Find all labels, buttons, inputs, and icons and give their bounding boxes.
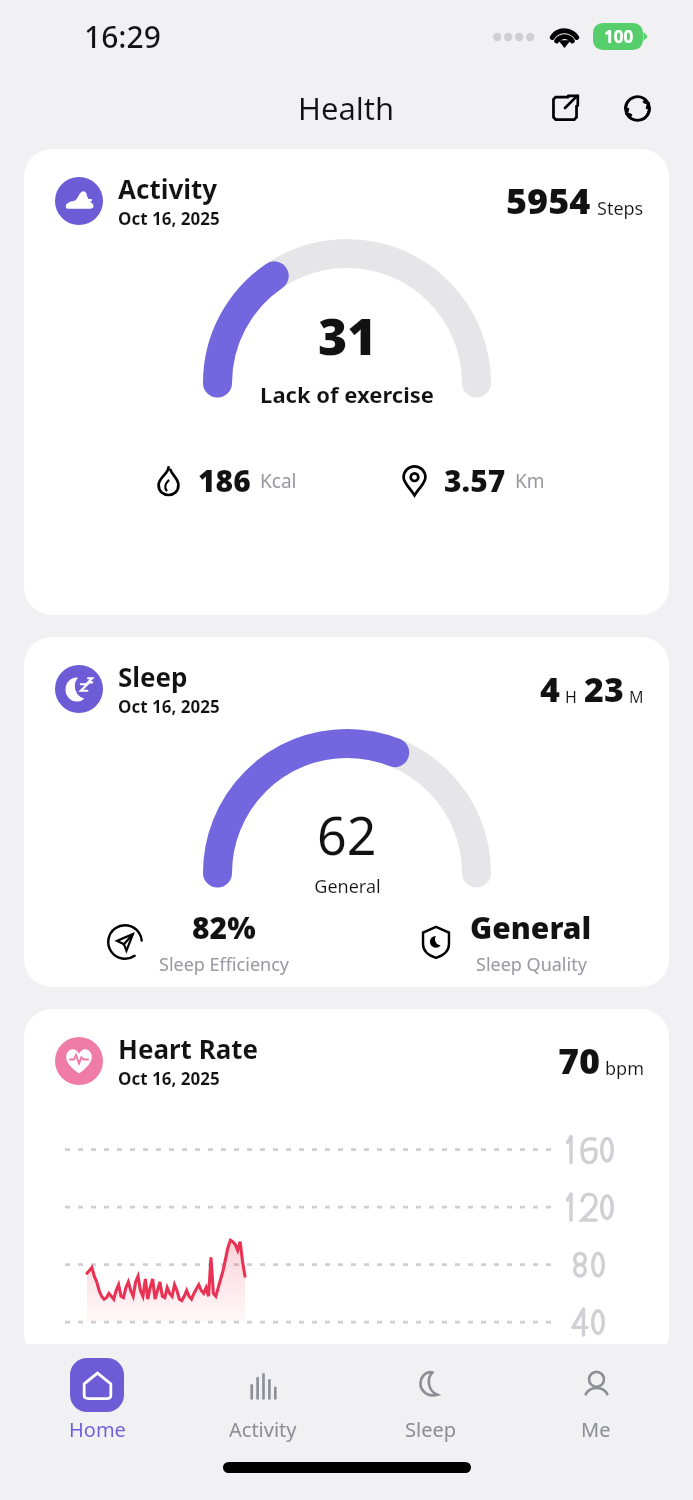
staticText: Oct 16, 2025 — [118, 1067, 220, 1090]
staticText: Sleep Quality — [476, 952, 587, 977]
button[interactable]: Activity — [24, 149, 669, 615]
button[interactable]: Activity — [193, 1344, 333, 1443]
button[interactable]: Sleep — [360, 1344, 500, 1443]
button[interactable]: Heart Rate — [24, 1009, 669, 1362]
staticText: Me — [581, 1416, 611, 1443]
staticText: Oct 16, 2025 — [118, 695, 220, 718]
staticText: 70 — [558, 1036, 601, 1085]
staticText: 62 — [317, 799, 377, 870]
button[interactable]: Share — [539, 82, 591, 134]
staticText: 186 — [198, 460, 251, 501]
staticText: Sleep Efficiency — [159, 952, 289, 977]
staticText: Oct 16, 2025 — [118, 207, 220, 230]
button[interactable]: Me — [526, 1344, 666, 1443]
staticText: Kcal — [260, 468, 297, 494]
staticText: Km — [515, 468, 545, 494]
staticText: General — [470, 907, 592, 948]
staticText: bpm — [605, 1056, 644, 1081]
button[interactable]: Refresh — [611, 82, 663, 134]
staticText: Home — [69, 1416, 126, 1443]
staticText: H — [565, 686, 577, 708]
button[interactable]: Sleep — [24, 637, 669, 987]
staticText: 31 — [318, 302, 377, 370]
staticText: Steps — [597, 196, 644, 221]
staticText: Sleep — [118, 659, 188, 694]
staticText: Activity — [229, 1416, 297, 1443]
staticText: Activity — [118, 171, 218, 206]
staticText: Heart Rate — [118, 1031, 259, 1066]
staticText: Sleep — [405, 1416, 456, 1443]
staticText: 100 — [604, 25, 634, 48]
staticText: Lack of exercise — [260, 379, 434, 409]
staticText: Health — [298, 87, 395, 129]
staticText: 5954 — [506, 176, 591, 225]
staticText: M — [629, 686, 644, 708]
staticText: General — [314, 874, 381, 899]
staticText: 23 — [584, 666, 624, 712]
staticText: 82% — [192, 907, 256, 948]
staticText: 3.57 — [444, 460, 506, 501]
staticText: 4 — [540, 666, 560, 712]
staticText: 16:29 — [84, 16, 161, 57]
button[interactable]: Home — [27, 1344, 167, 1443]
